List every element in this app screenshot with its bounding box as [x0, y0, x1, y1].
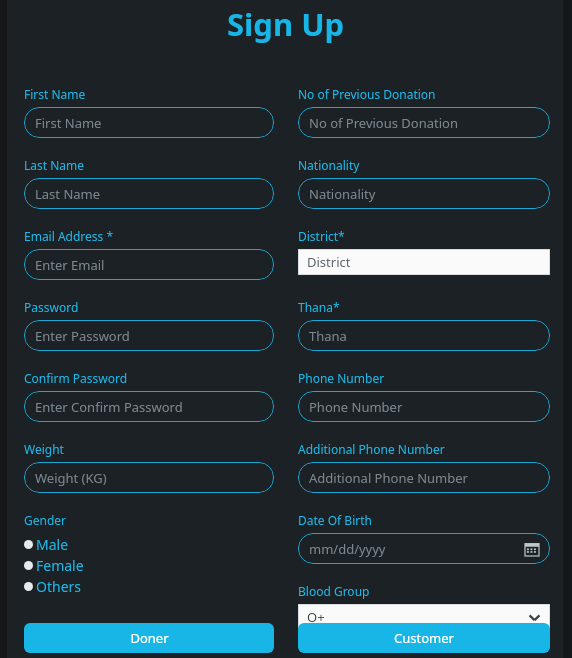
button[interactable]: Nationality: [298, 178, 550, 209]
staticText: Confirm Password: [24, 370, 128, 386]
button[interactable]: Thana: [298, 320, 550, 351]
staticText: mm/dd/yyyy: [309, 540, 386, 558]
button[interactable]: No of Previous Donation: [298, 107, 550, 138]
button[interactable]: Customer: [298, 623, 550, 653]
other: Pick date: [525, 542, 539, 556]
other: Expand blood group: [528, 611, 541, 624]
staticText: Weight (KG): [35, 469, 107, 487]
staticText: Sign Up: [227, 3, 345, 45]
button[interactable]: Last Name: [24, 178, 274, 209]
staticText: Doner: [130, 629, 169, 647]
staticText: Phone Number: [309, 398, 403, 416]
staticText: District*: [298, 228, 345, 244]
staticText: Others: [36, 577, 82, 596]
button[interactable]: Additional Phone Number: [298, 462, 550, 493]
staticText: Nationality: [298, 157, 360, 173]
staticText: Female: [36, 556, 84, 575]
staticText: Enter Password: [35, 327, 130, 345]
staticText: Additional Phone Number: [298, 441, 445, 457]
button[interactable]: Weight (KG): [24, 462, 274, 493]
staticText: Enter Email: [35, 256, 105, 274]
button[interactable]: O+: [298, 604, 550, 630]
button[interactable]: Doner: [24, 623, 274, 653]
staticText: Enter Confirm Password: [35, 398, 183, 416]
staticText: Email Address *: [24, 228, 114, 244]
staticText: District: [307, 253, 351, 271]
button[interactable]: Phone Number: [298, 391, 550, 422]
staticText: No of Previous Donation: [298, 86, 436, 102]
button[interactable]: mm/dd/yyyy: [298, 533, 550, 564]
staticText: Male: [36, 535, 69, 554]
button[interactable]: District: [298, 249, 550, 275]
staticText: Last Name: [24, 157, 85, 173]
staticText: Customer: [394, 629, 454, 647]
button[interactable]: Male: [24, 534, 69, 555]
staticText: Password: [24, 299, 79, 315]
button[interactable]: Enter Email: [24, 249, 274, 280]
staticText: Blood Group: [298, 583, 370, 599]
staticText: Phone Number: [298, 370, 385, 386]
button[interactable]: Female: [24, 555, 84, 576]
staticText: Date Of Birth: [298, 512, 372, 528]
button[interactable]: First Name: [24, 107, 274, 138]
staticText: Thana*: [298, 299, 340, 315]
staticText: First Name: [24, 86, 86, 102]
staticText: O+: [307, 608, 325, 626]
button[interactable]: Enter Confirm Password: [24, 391, 274, 422]
staticText: Gender: [24, 512, 67, 528]
staticText: No of Previous Donation: [309, 114, 458, 132]
staticText: Weight: [24, 441, 64, 457]
staticText: Last Name: [35, 185, 101, 203]
staticText: Nationality: [309, 185, 376, 203]
staticText: Additional Phone Number: [309, 469, 468, 487]
button[interactable]: Enter Password: [24, 320, 274, 351]
button[interactable]: Others: [24, 576, 82, 597]
staticText: Thana: [309, 327, 347, 345]
staticText: First Name: [35, 114, 102, 132]
